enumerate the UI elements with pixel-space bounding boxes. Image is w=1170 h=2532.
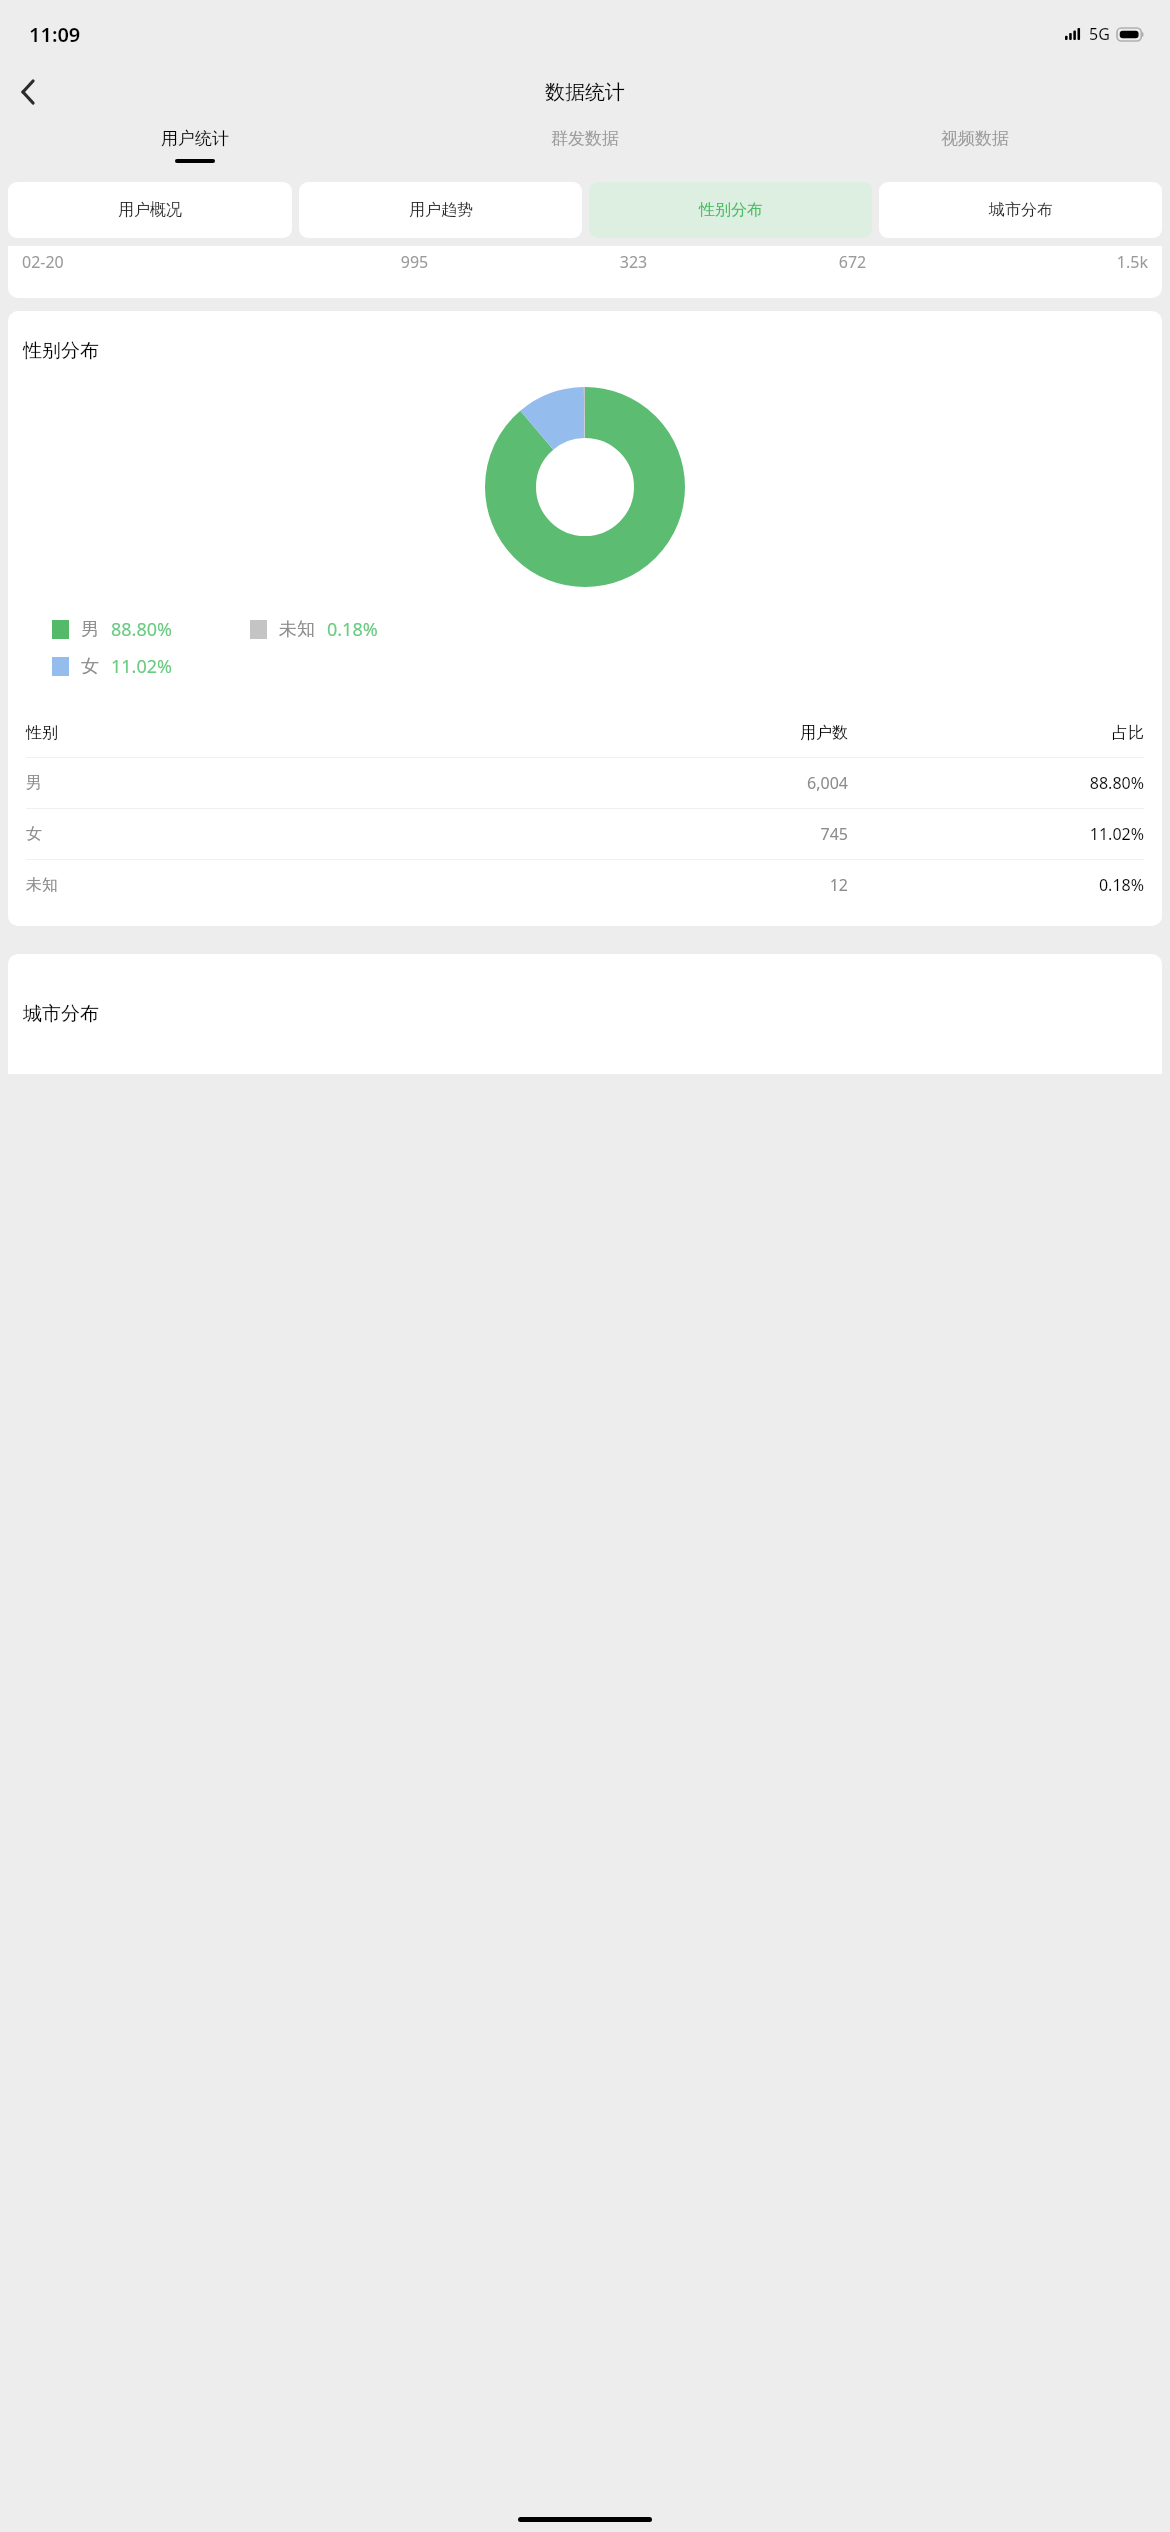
staticText: 性别分布: [699, 200, 763, 220]
staticText: 用户数: [437, 723, 848, 743]
staticText: 未知: [26, 875, 437, 895]
button[interactable]: 男: [8, 758, 1162, 808]
staticText: 占比: [848, 723, 1144, 743]
button[interactable]: 女: [8, 809, 1162, 859]
staticText: 性别分布: [23, 339, 99, 363]
staticText: 0.18%: [848, 874, 1144, 896]
staticText: 用户趋势: [409, 200, 473, 220]
button[interactable]: 用户统计: [0, 120, 390, 174]
staticText: 用户统计: [161, 128, 229, 149]
staticText: 未知: [279, 618, 315, 641]
staticText: 995: [305, 251, 524, 273]
button[interactable]: 视频数据: [780, 120, 1170, 174]
staticText: 数据统计: [545, 80, 625, 105]
staticText: 02-20: [22, 251, 305, 273]
staticText: 性别: [26, 723, 437, 743]
staticText: 女: [26, 824, 437, 844]
staticText: 视频数据: [941, 128, 1009, 149]
staticText: 11.02%: [111, 654, 172, 679]
staticText: 11.02%: [848, 823, 1144, 845]
button[interactable]: Back: [4, 68, 52, 116]
staticText: 男: [26, 773, 437, 793]
staticText: 323: [524, 251, 743, 273]
button[interactable]: 未知: [8, 860, 1162, 910]
staticText: 88.80%: [111, 617, 172, 642]
staticText: 12: [437, 874, 848, 896]
staticText: 88.80%: [848, 772, 1144, 794]
staticText: 11:09: [29, 21, 81, 48]
staticText: 0.18%: [327, 617, 378, 642]
staticText: 用户概况: [118, 200, 182, 220]
staticText: 群发数据: [551, 128, 619, 149]
button[interactable]: 用户趋势: [299, 182, 582, 238]
staticText: 672: [743, 251, 962, 273]
staticText: 5G: [1089, 23, 1110, 45]
staticText: 745: [437, 823, 848, 845]
button[interactable]: 群发数据: [390, 120, 780, 174]
staticText: 1.5k: [962, 251, 1148, 273]
staticText: 男: [81, 618, 99, 641]
staticText: 女: [81, 655, 99, 678]
button[interactable]: 城市分布: [879, 182, 1162, 238]
button[interactable]: 用户概况: [8, 182, 292, 238]
staticText: 城市分布: [989, 200, 1053, 220]
button[interactable]: 性别分布: [589, 182, 872, 238]
staticText: 6,004: [437, 772, 848, 794]
staticText: 城市分布: [23, 1002, 99, 1026]
